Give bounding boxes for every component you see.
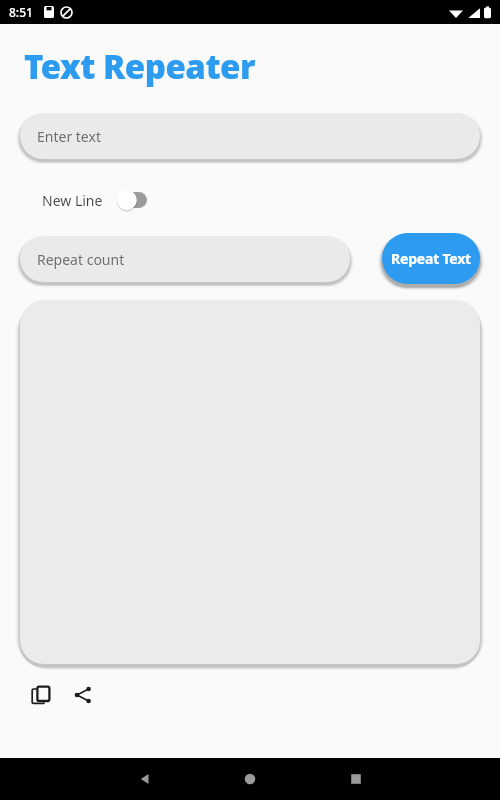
button[interactable]: Enter text: [20, 113, 480, 159]
button[interactable]: Back: [128, 762, 162, 796]
staticText: Repeat count: [37, 250, 125, 269]
staticText: Repeat Text: [391, 249, 471, 268]
staticText: 8:51: [9, 4, 33, 20]
staticText: Enter text: [37, 127, 101, 146]
staticText: New Line: [42, 191, 103, 210]
button[interactable]: Share: [68, 680, 98, 710]
button[interactable]: Recents: [339, 762, 373, 796]
button[interactable]: Home: [233, 762, 267, 796]
button[interactable]: Repeat count: [20, 236, 350, 282]
button[interactable]: Repeat Text: [382, 233, 480, 284]
staticText: Text Repeater: [24, 44, 255, 89]
button[interactable]: Copy: [26, 680, 56, 710]
button[interactable]: New Line: [40, 185, 149, 215]
